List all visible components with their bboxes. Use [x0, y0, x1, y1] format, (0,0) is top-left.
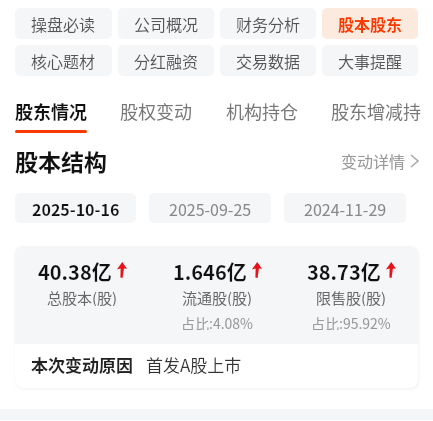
staticText: 股本股东: [338, 12, 403, 35]
staticText: 限售股(股): [316, 287, 387, 306]
staticText: 大事提醒: [338, 49, 403, 72]
staticText: 股东增减持: [331, 98, 421, 124]
staticText: 公司概况: [134, 12, 199, 35]
staticText: 核心题材: [31, 49, 96, 72]
staticText: 股权变动: [120, 98, 192, 124]
staticText: 首发A股上市: [146, 352, 242, 377]
button[interactable]: 2025-09-25: [149, 193, 271, 223]
staticText: 变动详情: [341, 149, 406, 172]
staticText: 2025-10-16: [32, 197, 120, 220]
staticText: 股本结构: [15, 144, 107, 177]
button[interactable]: 变动详情: [341, 149, 418, 172]
staticText: 占比:95.92%: [311, 313, 391, 330]
button[interactable]: 分红融资: [118, 45, 214, 76]
button[interactable]: 大事提醒: [322, 45, 418, 76]
staticText: 占比:4.08%: [181, 313, 253, 330]
button[interactable]: 机构持仓: [226, 98, 298, 133]
button[interactable]: 核心题材: [15, 45, 112, 76]
button[interactable]: 财务分析: [220, 8, 316, 39]
button[interactable]: 股本股东: [322, 8, 418, 39]
staticText: 2024-11-29: [304, 197, 387, 220]
button[interactable]: 股东情况: [15, 98, 87, 133]
staticText: 总股本(股): [47, 287, 118, 306]
staticText: 2025-09-25: [169, 197, 252, 220]
staticText: 分红融资: [134, 49, 199, 72]
staticText: 本次变动原因: [31, 352, 133, 377]
button[interactable]: 2025-10-16: [15, 193, 136, 223]
staticText: 机构持仓: [226, 98, 298, 124]
button[interactable]: 股权变动: [120, 98, 192, 133]
staticText: 1.646亿: [173, 257, 247, 283]
staticText: 股东情况: [15, 98, 87, 124]
button[interactable]: 交易数据: [220, 45, 316, 76]
button[interactable]: 操盘必读: [15, 8, 112, 39]
button[interactable]: 公司概况: [118, 8, 214, 39]
staticText: 财务分析: [236, 12, 301, 35]
staticText: 流通股(股): [182, 287, 253, 306]
staticText: 38.73亿: [307, 257, 381, 283]
staticText: 40.38亿: [38, 257, 112, 283]
staticText: 操盘必读: [31, 12, 96, 35]
staticText: 交易数据: [236, 49, 301, 72]
button[interactable]: 股东增减持: [331, 98, 421, 133]
button[interactable]: 2024-11-29: [284, 193, 406, 223]
